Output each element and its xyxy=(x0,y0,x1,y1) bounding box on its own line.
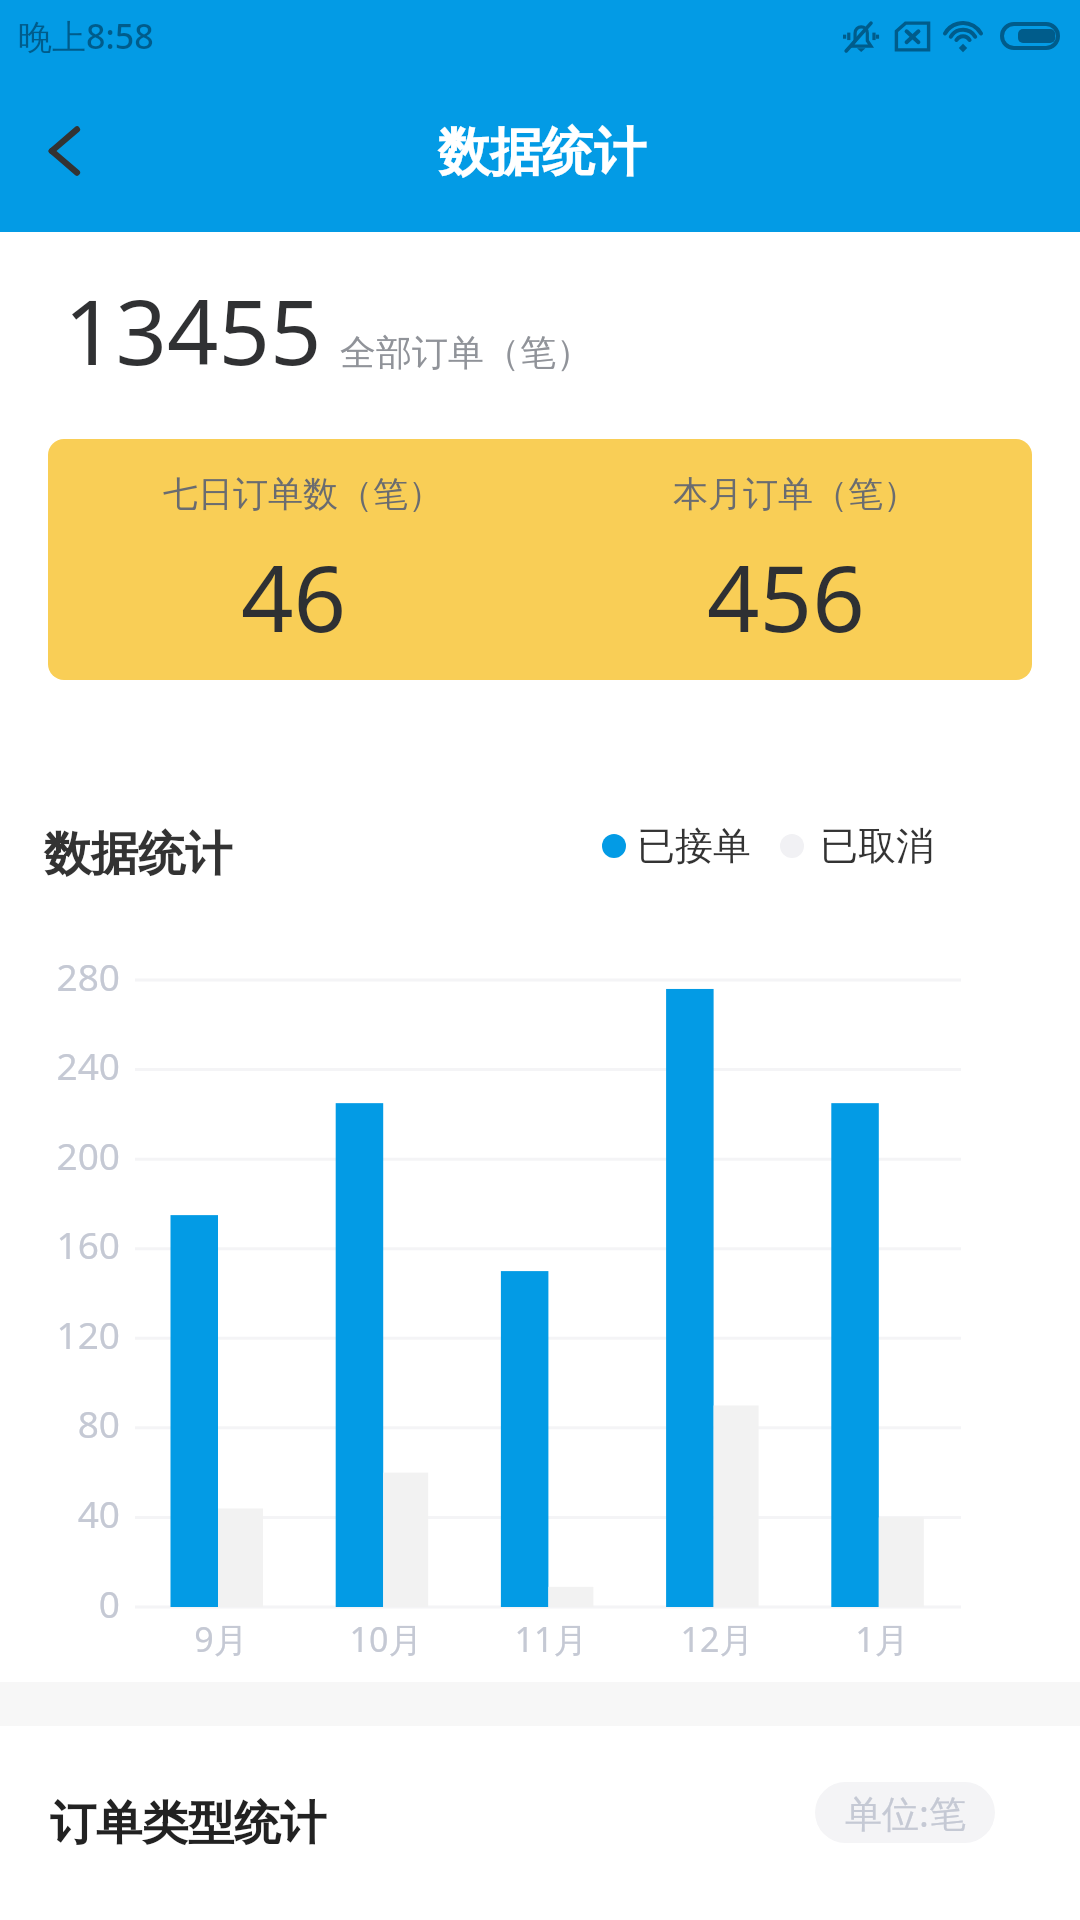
staticText: 80 xyxy=(77,1398,120,1448)
staticText: 已取消 xyxy=(820,822,934,870)
staticText: 数据统计 xyxy=(44,825,232,884)
staticText: 数据统计 xyxy=(438,120,646,186)
staticText: 200 xyxy=(56,1130,120,1180)
staticText: 120 xyxy=(56,1309,120,1359)
button[interactable]: 七日订单数（笔） xyxy=(48,439,540,680)
staticText: 0 xyxy=(98,1578,120,1628)
staticText: 本月订单（笔） xyxy=(673,472,918,516)
staticText: 12月 xyxy=(617,1616,817,1662)
staticText: 订单类型统计 xyxy=(50,1795,326,1853)
staticText: 240 xyxy=(56,1040,120,1090)
staticText: 七日订单数（笔） xyxy=(163,472,443,516)
button[interactable]: 本月订单（笔） xyxy=(540,439,1032,680)
staticText: 9月 xyxy=(121,1616,321,1662)
staticText: 晚上8:58 xyxy=(18,13,154,59)
button[interactable]: 已取消 xyxy=(780,822,934,870)
staticText: 10月 xyxy=(286,1616,486,1662)
staticText: 已接单 xyxy=(637,822,751,870)
staticText: 1月 xyxy=(782,1616,982,1662)
staticText: 46 xyxy=(241,534,347,659)
staticText: 13455 xyxy=(64,269,322,392)
staticText: 280 xyxy=(56,951,120,1001)
staticText: 160 xyxy=(56,1219,120,1269)
button[interactable]: 单位:笔 xyxy=(815,1782,995,1843)
staticText: 全部订单（笔） xyxy=(340,330,592,375)
staticText: 11月 xyxy=(451,1616,651,1662)
button[interactable]: 已接单 xyxy=(602,822,751,870)
staticText: 40 xyxy=(77,1488,120,1538)
button[interactable]: Back xyxy=(10,96,120,206)
staticText: 单位:笔 xyxy=(845,1787,966,1838)
staticText: 456 xyxy=(707,534,865,659)
